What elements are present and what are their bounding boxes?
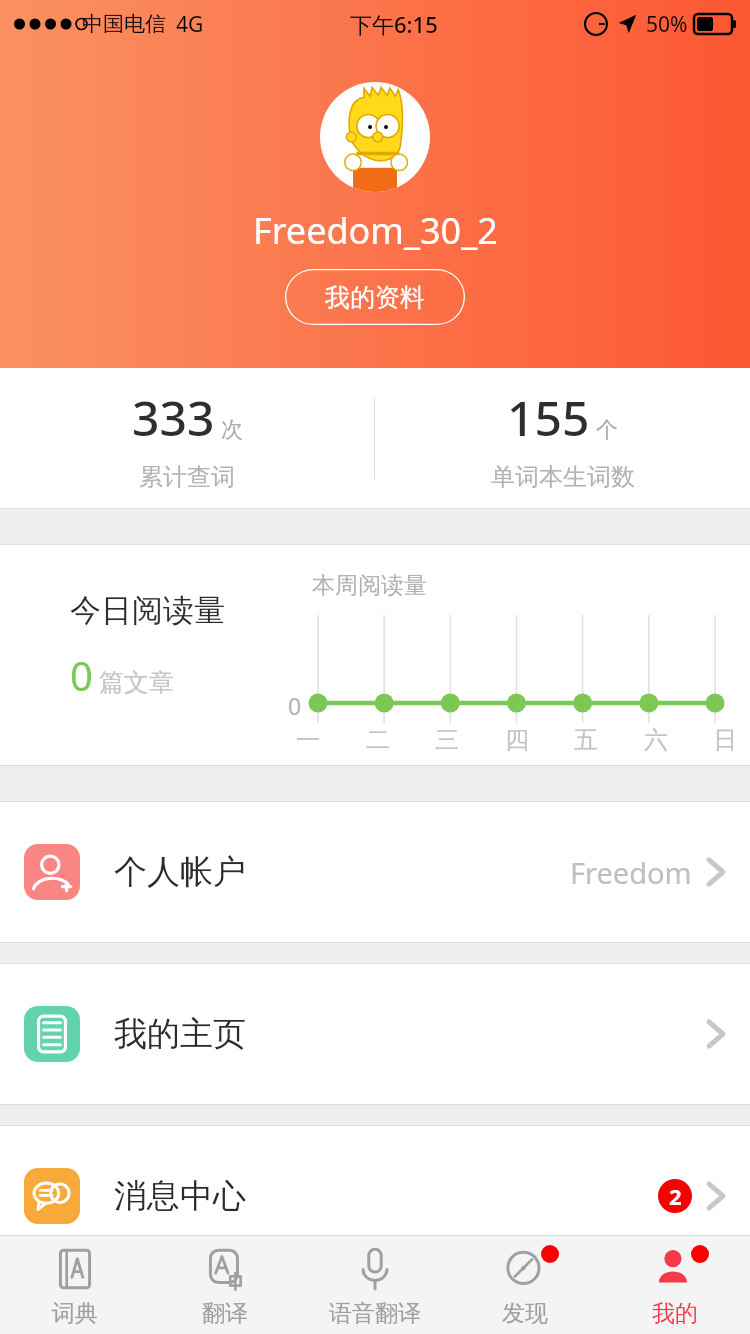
staticText: 翻译 bbox=[202, 1299, 248, 1328]
staticText: 扩充词库和语音库 bbox=[114, 1280, 378, 1322]
staticText: 下午6:15 bbox=[350, 9, 438, 39]
staticText: Freedom_30_2 bbox=[253, 206, 498, 255]
button[interactable]: 词典 bbox=[0, 1236, 150, 1334]
staticText: 50% bbox=[646, 10, 688, 39]
staticText: 四 bbox=[505, 725, 529, 755]
button[interactable]: 语音翻译 bbox=[300, 1236, 450, 1334]
staticText: 155 bbox=[507, 385, 590, 450]
staticText: 本周阅读量 bbox=[312, 571, 427, 600]
staticText: 三 bbox=[435, 725, 459, 755]
staticText: 五 bbox=[574, 725, 598, 755]
staticText: 篇文章 bbox=[99, 667, 174, 698]
button[interactable]: 我的主页 bbox=[0, 964, 750, 1104]
staticText: 333 bbox=[132, 385, 215, 450]
staticText: 中国电信 bbox=[82, 11, 166, 37]
button[interactable]: 155 bbox=[375, 368, 750, 508]
button[interactable]: 我的 bbox=[600, 1236, 750, 1334]
staticText: 今日阅读量 bbox=[70, 591, 225, 630]
staticText: 0 bbox=[70, 648, 93, 702]
staticText: Freedom bbox=[570, 853, 692, 892]
button[interactable]: 扩充词库和语音库 bbox=[0, 1267, 750, 1334]
staticText: 4G bbox=[176, 10, 204, 39]
staticText: 我的 bbox=[652, 1299, 698, 1328]
staticText: 0 bbox=[288, 690, 302, 721]
staticText: 个 bbox=[596, 416, 618, 444]
staticText: 词典 bbox=[52, 1299, 98, 1328]
button[interactable]: 消息中心 bbox=[0, 1126, 750, 1266]
staticText: 我的主页 bbox=[114, 1013, 246, 1055]
button[interactable]: 333 bbox=[0, 368, 374, 508]
staticText: 我的资料 bbox=[325, 282, 425, 313]
staticText: 日 bbox=[713, 725, 737, 755]
staticText: 单词本生词数 bbox=[491, 462, 635, 492]
staticText: 次 bbox=[221, 416, 243, 444]
staticText: 2 bbox=[669, 1181, 682, 1211]
staticText: 语音翻译 bbox=[329, 1299, 421, 1328]
staticText: 六 bbox=[644, 725, 668, 755]
staticText: 累计查词 bbox=[139, 462, 235, 492]
staticText: 发现 bbox=[502, 1299, 548, 1328]
button[interactable]: 发现 bbox=[450, 1236, 600, 1334]
staticText: 个人帐户 bbox=[114, 851, 246, 893]
staticText: 消息中心 bbox=[114, 1175, 246, 1217]
button[interactable]: 个人帐户 bbox=[0, 802, 750, 942]
button[interactable]: 翻译 bbox=[150, 1236, 300, 1334]
staticText: 二 bbox=[366, 725, 390, 755]
staticText: 一 bbox=[296, 725, 320, 755]
button[interactable]: Avatar bbox=[320, 82, 430, 192]
button[interactable]: 我的资料 bbox=[285, 269, 465, 325]
